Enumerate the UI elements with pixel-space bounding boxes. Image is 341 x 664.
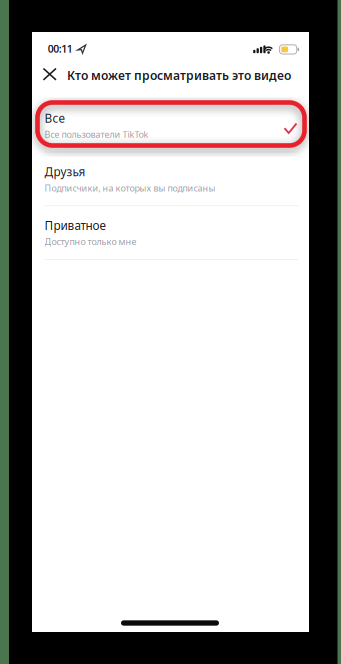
button[interactable] (43, 68, 56, 80)
staticText: Приватное (44, 217, 106, 233)
staticText: Все (44, 110, 65, 126)
staticText: 00:11 (48, 42, 73, 56)
button[interactable]: Друзья (32, 152, 309, 205)
button[interactable]: Все (32, 98, 309, 152)
staticText: Друзья (44, 164, 85, 180)
staticText: Кто может просматривать это видео (67, 67, 291, 83)
staticText: Подписчики, на которых вы подписаны (44, 182, 215, 194)
staticText: Доступно только мне (44, 235, 136, 248)
button[interactable]: Приватное (32, 205, 309, 259)
staticText: Все пользователи TikTok (44, 128, 148, 140)
